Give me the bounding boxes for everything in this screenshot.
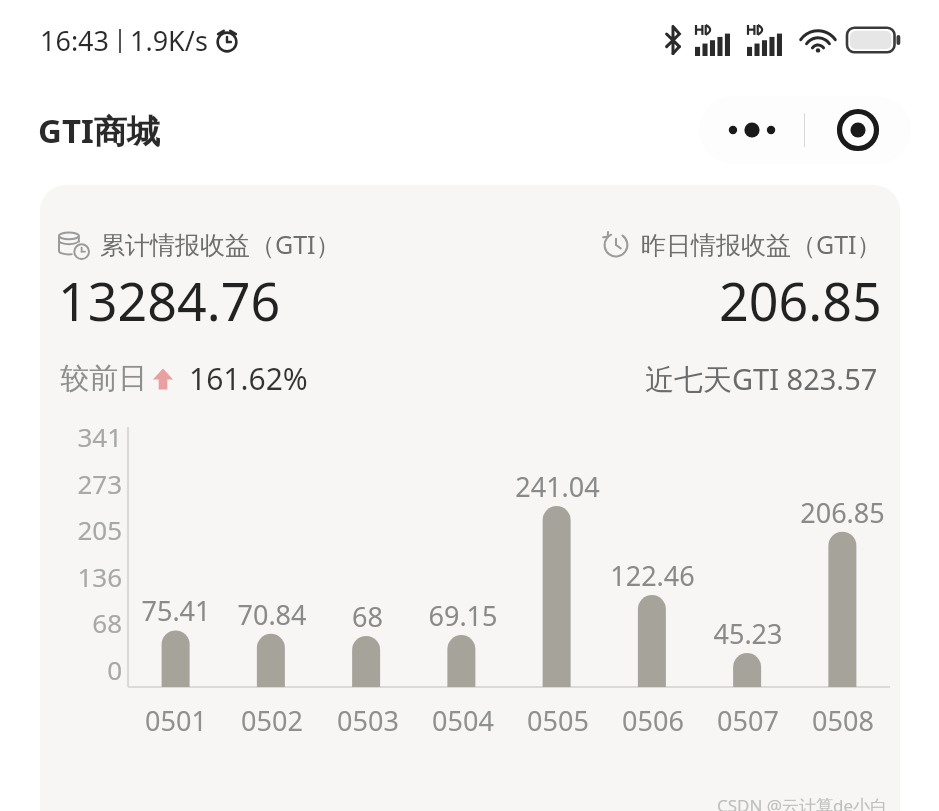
staticText: 75.41 — [141, 592, 211, 629]
staticText: GTI商城 — [38, 108, 160, 153]
staticText: 1.9K/s — [130, 22, 208, 59]
staticText: 206.85 — [800, 494, 885, 531]
staticText: 0505 — [527, 702, 589, 739]
staticText: 45.23 — [713, 615, 783, 652]
staticText: 341 — [77, 419, 122, 454]
staticText: 13284.76 — [58, 265, 281, 336]
staticText: 205 — [77, 512, 122, 547]
staticText: 16:43 — [40, 22, 110, 59]
staticText: 241.04 — [515, 468, 600, 505]
staticText: 273 — [77, 466, 122, 501]
staticText: 136 — [77, 559, 122, 594]
staticText: 0508 — [812, 702, 874, 739]
staticText: 0501 — [145, 702, 207, 739]
staticText: 68 — [352, 598, 383, 635]
staticText: 206.85 — [719, 265, 882, 336]
staticText: 0 — [107, 652, 122, 687]
staticText: 122.46 — [610, 557, 695, 594]
staticText: CSDN @云计算de小白 — [717, 794, 888, 811]
staticText: 0504 — [432, 702, 494, 739]
staticText: 0502 — [241, 702, 303, 739]
staticText: 昨日情报收益（GTI） — [641, 227, 882, 261]
staticText: 0506 — [622, 702, 684, 739]
staticText: 0507 — [717, 702, 779, 739]
staticText: 0503 — [337, 702, 399, 739]
button[interactable]: Close — [805, 96, 911, 164]
staticText: 161.62% — [189, 358, 308, 399]
staticText: 68 — [92, 605, 122, 640]
staticText: 70.84 — [237, 596, 307, 633]
staticText: 累计情报收益（GTI） — [100, 227, 341, 261]
staticText: 较前日 — [60, 360, 147, 397]
button[interactable]: More — [699, 96, 804, 164]
staticText: 69.15 — [428, 597, 498, 634]
staticText: 近七天GTI 823.57 — [645, 359, 878, 399]
